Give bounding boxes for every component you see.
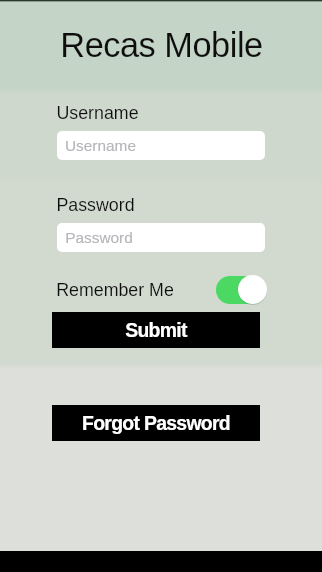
staticText: Submit [125, 319, 187, 341]
button[interactable]: Submit [52, 312, 260, 348]
button[interactable]: Forgot Password [52, 405, 260, 441]
staticText: Password [65, 229, 133, 246]
staticText: Remember Me [56, 280, 174, 300]
staticText: Password [56, 195, 135, 215]
staticText: Recas Mobile [60, 26, 263, 64]
button[interactable]: Password [57, 223, 265, 252]
button[interactable]: Username [57, 131, 265, 160]
button[interactable]: Remember Me toggle [216, 275, 267, 306]
staticText: Forgot Password [82, 412, 230, 434]
staticText: Username [56, 103, 139, 123]
staticText: Username [65, 137, 136, 154]
